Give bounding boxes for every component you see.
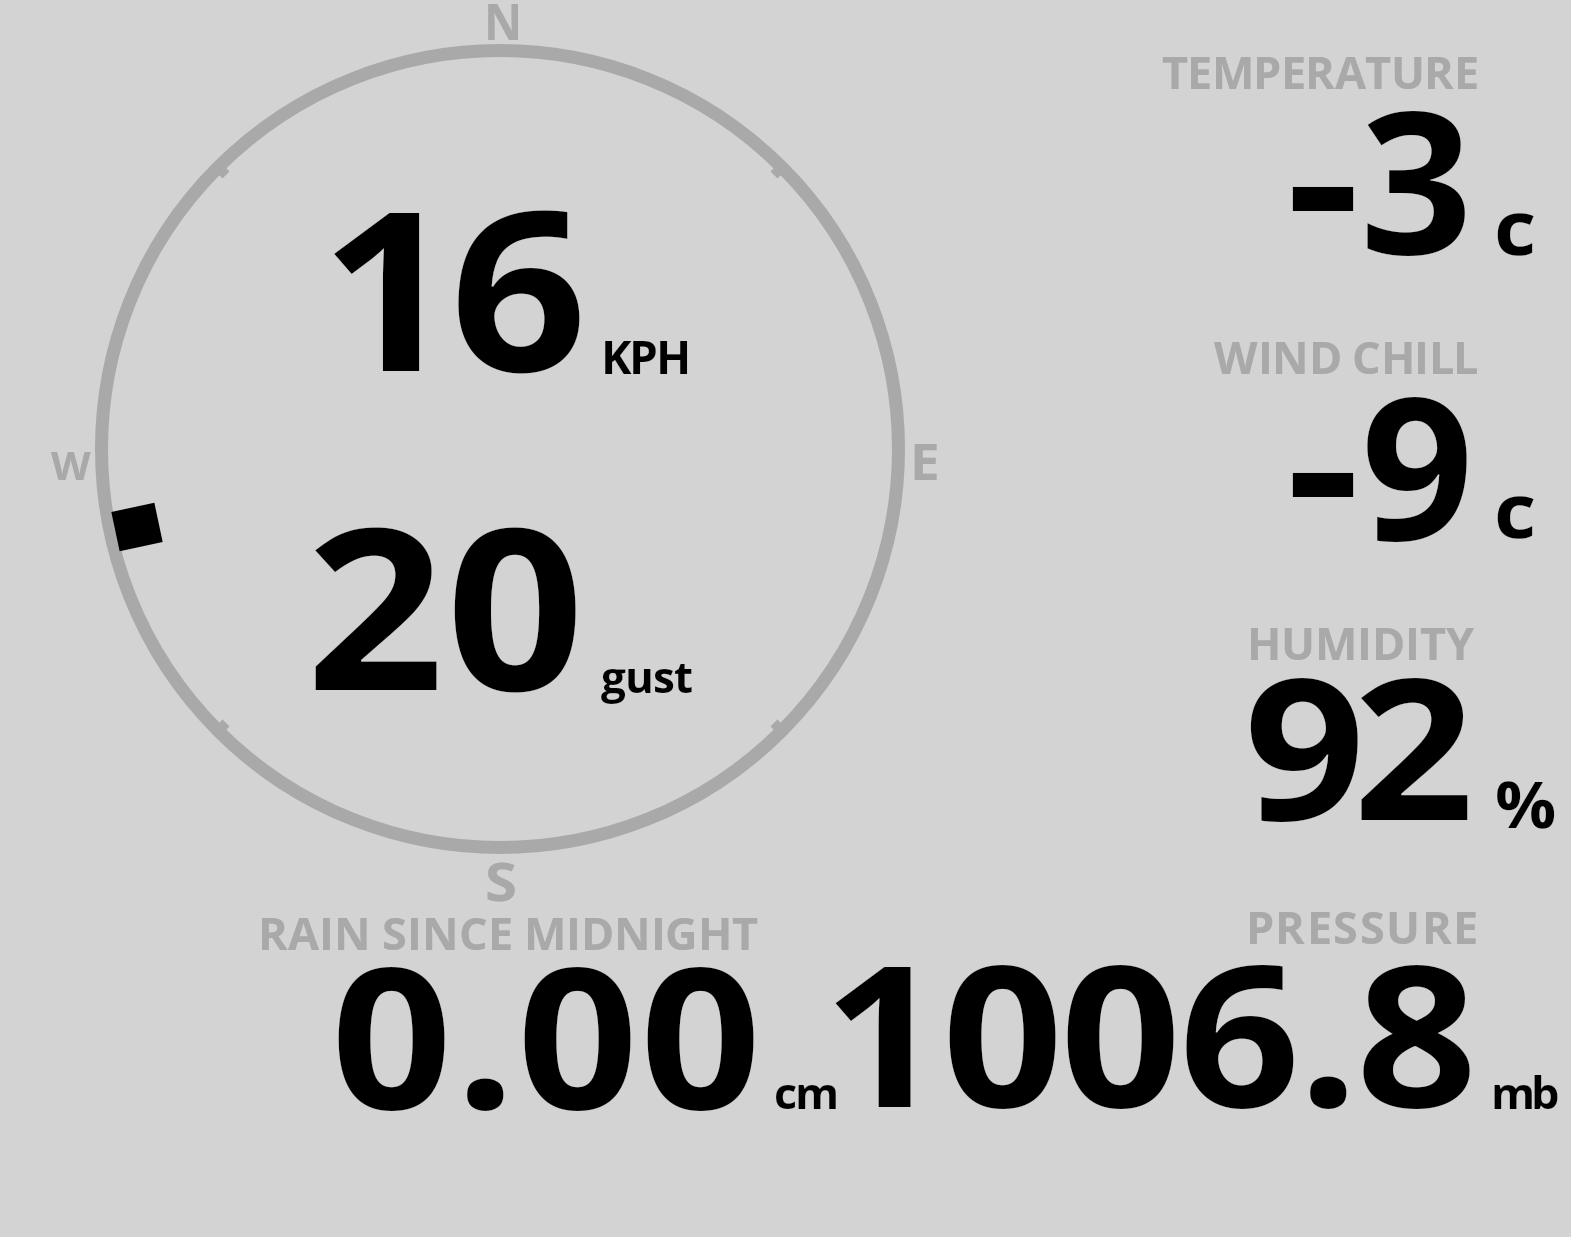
- button[interactable]: Wind chill minus 9 degrees Celsius: [1140, 325, 1571, 555]
- button[interactable]: Rain since midnight 0.00 cm: [250, 900, 850, 1130]
- button[interactable]: Wind speed 16 KPH, gust 20, direction we…: [92, 42, 908, 858]
- button[interactable]: Humidity 92 percent: [1140, 610, 1571, 840]
- button[interactable]: Temperature minus 3 degrees Celsius: [1140, 40, 1571, 270]
- button[interactable]: Pressure 1006.8 mb: [840, 900, 1571, 1130]
